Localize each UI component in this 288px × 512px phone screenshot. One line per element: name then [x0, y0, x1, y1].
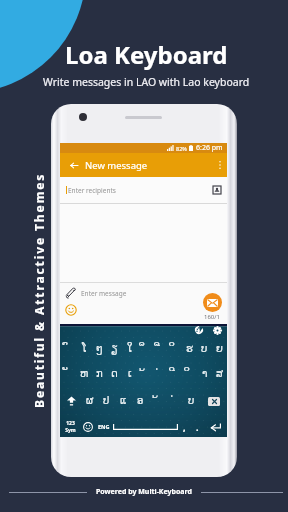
staticText: 123 Sym [65, 420, 76, 433]
button[interactable]: 123 Sym [60, 416, 80, 437]
staticText: ອ [137, 395, 144, 407]
button[interactable]: ຽ [107, 336, 122, 361]
button[interactable]: ສ [212, 361, 227, 386]
button[interactable]: Contacts [213, 186, 221, 194]
staticText: ໃ [127, 343, 133, 355]
staticText: າ [202, 368, 208, 380]
button[interactable]: ກ [92, 361, 107, 386]
staticText: ຍ [216, 343, 223, 355]
button[interactable]: . [191, 416, 204, 437]
button[interactable]: , [178, 416, 191, 437]
button[interactable]: Emoji keyboard [80, 416, 95, 437]
button[interactable]: າ [197, 361, 212, 386]
staticText: . [196, 421, 199, 433]
button[interactable]: ່ [152, 361, 167, 386]
staticText: New message [85, 159, 148, 172]
button[interactable]: ້ [149, 386, 166, 416]
staticText: Enter message [81, 289, 127, 298]
staticText: 160/1 [204, 313, 220, 321]
button[interactable]: ບ [197, 336, 212, 361]
button[interactable]: Enter [204, 416, 227, 437]
button[interactable]: ເ [122, 361, 137, 386]
staticText: ຫ [80, 368, 89, 380]
button[interactable]: ໆ [92, 336, 107, 361]
staticText: ປ [103, 395, 110, 407]
button[interactable]: ປ [98, 386, 115, 416]
button[interactable]: ື [152, 336, 167, 361]
staticText: ເ [128, 368, 132, 380]
button[interactable]: ໂ [76, 336, 92, 361]
button[interactable]: ແ [115, 386, 132, 416]
button[interactable]: More options [213, 153, 227, 177]
button[interactable]: Shift [60, 386, 82, 416]
button[interactable]: ENG [95, 416, 113, 437]
staticText: ຜ [86, 395, 94, 407]
staticText: 82% [176, 145, 187, 152]
staticText: 6:26 pm [196, 143, 223, 153]
button[interactable]: ິ [167, 336, 182, 361]
button[interactable]: Settings [211, 324, 223, 336]
staticText: , [183, 421, 186, 433]
button[interactable]: ້ [137, 361, 152, 386]
button[interactable]: Space [113, 416, 178, 437]
staticText: ກ [96, 368, 103, 380]
staticText: ຽ [111, 343, 118, 355]
button[interactable]: ຫ [76, 361, 92, 386]
staticText: ENG [98, 423, 110, 430]
button[interactable]: Themes [193, 324, 205, 336]
button[interactable]: ຮ [182, 336, 197, 361]
button[interactable]: ີ [167, 361, 182, 386]
staticText: ແ [120, 395, 127, 407]
staticText: ຮ [186, 343, 193, 355]
staticText: ສ [216, 368, 224, 380]
button[interactable]: ຜ [82, 386, 98, 416]
button[interactable]: ົ [60, 336, 76, 361]
button[interactable]: Backspace [200, 386, 227, 416]
button[interactable]: ອ [132, 386, 149, 416]
staticText: Beautiful & Attractive Themes [31, 172, 47, 408]
staticText: Loa Keyboard [65, 38, 228, 71]
staticText: ບ [201, 343, 208, 355]
button[interactable]: ໃ [122, 336, 137, 361]
staticText: Enter recipients [68, 186, 116, 195]
button[interactable]: Send [203, 293, 222, 312]
button[interactable]: Back [65, 153, 83, 177]
staticText: ໂ [82, 343, 87, 355]
button[interactable]: ຍ [212, 336, 227, 361]
staticText: Powered by Multi-Keyboard [96, 487, 192, 497]
button[interactable]: ຶ [137, 336, 152, 361]
staticText: ໆ [96, 343, 103, 355]
staticText: ດ [111, 368, 118, 380]
button[interactable]: ບ [183, 386, 200, 416]
button[interactable]: ດ [107, 361, 122, 386]
staticText: ບ [188, 395, 195, 407]
button[interactable]: ັ [60, 361, 76, 386]
staticText: Write messages in LAO with Lao keyboard [43, 75, 250, 89]
button[interactable]: ່ [166, 386, 183, 416]
button[interactable]: Emoji [65, 304, 77, 316]
button[interactable]: ິ [182, 361, 197, 386]
